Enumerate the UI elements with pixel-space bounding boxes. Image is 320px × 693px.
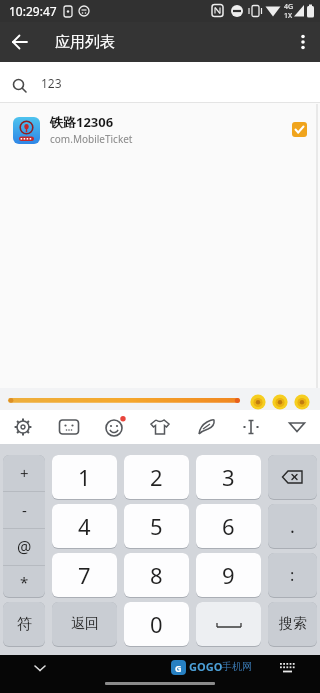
button[interactable]: 3 bbox=[196, 455, 261, 499]
button[interactable] bbox=[280, 410, 314, 444]
button[interactable] bbox=[292, 122, 307, 137]
button[interactable]: 搜索 bbox=[268, 602, 317, 646]
staticText: 返回 bbox=[71, 615, 99, 633]
button[interactable]: 符 bbox=[3, 602, 45, 646]
button[interactable]: @ bbox=[3, 529, 45, 565]
staticText: 9 bbox=[222, 560, 235, 590]
button[interactable]: - bbox=[3, 492, 45, 528]
button[interactable]: 1 bbox=[52, 455, 117, 499]
button[interactable] bbox=[143, 410, 177, 444]
button[interactable]: 9 bbox=[196, 553, 261, 597]
staticText: G bbox=[175, 662, 182, 674]
staticText: 铁路12306 bbox=[50, 113, 114, 131]
staticText: 6 bbox=[222, 511, 235, 541]
staticText: 1X bbox=[284, 11, 293, 21]
button[interactable]: 0 bbox=[124, 602, 189, 646]
button[interactable]: 铁路12306 bbox=[0, 104, 320, 160]
staticText: com.MobileTicket bbox=[50, 132, 133, 146]
button[interactable]: 8 bbox=[124, 553, 189, 597]
button[interactable]: 返回 bbox=[52, 602, 117, 646]
staticText: 4 bbox=[78, 511, 91, 541]
staticText: 123 bbox=[41, 75, 62, 91]
staticText: 手机网 bbox=[222, 660, 252, 673]
staticText: . bbox=[290, 514, 295, 539]
button[interactable]: 4 bbox=[52, 504, 117, 548]
staticText: 3 bbox=[222, 462, 235, 492]
button[interactable] bbox=[4, 26, 36, 58]
button[interactable]: 7 bbox=[52, 553, 117, 597]
staticText: * bbox=[20, 572, 29, 592]
button[interactable] bbox=[268, 455, 317, 499]
staticText: 0 bbox=[150, 609, 163, 639]
button[interactable]: 5 bbox=[124, 504, 189, 548]
button[interactable]: * bbox=[3, 566, 45, 597]
button[interactable]: 6 bbox=[196, 504, 261, 548]
staticText: @ bbox=[17, 536, 32, 558]
staticText: 10:29:47 bbox=[9, 3, 57, 19]
staticText: + bbox=[20, 463, 29, 483]
staticText: 5 bbox=[150, 511, 163, 541]
button[interactable] bbox=[52, 410, 86, 444]
button[interactable] bbox=[97, 410, 131, 444]
staticText: - bbox=[22, 500, 27, 520]
staticText: 1 bbox=[78, 462, 91, 492]
button[interactable]: + bbox=[3, 455, 45, 491]
button[interactable]: 2 bbox=[124, 455, 189, 499]
button[interactable] bbox=[288, 26, 318, 58]
staticText: 2 bbox=[150, 462, 163, 492]
button[interactable] bbox=[189, 410, 223, 444]
button[interactable] bbox=[196, 602, 261, 646]
button[interactable] bbox=[272, 655, 302, 681]
button[interactable] bbox=[234, 410, 268, 444]
staticText: 应用列表 bbox=[55, 33, 115, 52]
staticText: : bbox=[290, 564, 295, 586]
button[interactable] bbox=[24, 655, 56, 681]
staticText: 8 bbox=[150, 560, 163, 590]
staticText: 7 bbox=[78, 560, 91, 590]
staticText: 4G bbox=[284, 2, 294, 12]
staticText: 符 bbox=[17, 615, 32, 634]
button[interactable]: . bbox=[268, 504, 317, 548]
staticText: 搜索 bbox=[279, 615, 307, 633]
staticText: GOGO bbox=[189, 659, 223, 674]
button[interactable]: 123 bbox=[0, 62, 320, 103]
button[interactable]: : bbox=[268, 553, 317, 597]
button[interactable] bbox=[6, 410, 40, 444]
